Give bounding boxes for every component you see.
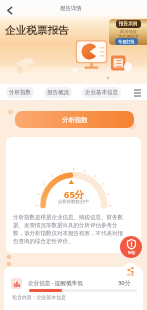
button[interactable]: 企业基本信息 — [82, 87, 121, 98]
staticText: 30分 — [118, 279, 131, 287]
button[interactable]: Report service — [120, 236, 142, 258]
staticText: 分析指数 — [62, 116, 88, 124]
staticText: 报告示例 — [119, 21, 138, 27]
staticText: 企业税票报告 — [5, 24, 69, 37]
staticText: 分析指数是根据企业信息、纳税信息、财务数据、发票情况等数据出具的分析评估参考分数… — [13, 214, 128, 244]
button[interactable]: Share — [122, 263, 139, 280]
staticText: 报告详情 — [60, 5, 82, 12]
staticText: 专属打造 — [118, 39, 135, 44]
staticText: 报告概况 — [47, 89, 69, 96]
staticText: 分析指数得分中 — [58, 199, 89, 205]
button[interactable]: 分析指数 — [15, 111, 134, 128]
staticText: 分享 — [127, 273, 134, 277]
staticText: 包含内容：企业基本信息 — [12, 294, 66, 300]
staticText: 企业基本信息 — [85, 89, 118, 96]
staticText: 为亿易助手 — [118, 34, 139, 39]
button[interactable]: 报告概况 — [44, 87, 72, 98]
staticText: 分析指数 — [9, 89, 31, 96]
button[interactable]: 分析指数 — [6, 87, 34, 98]
button[interactable]: Back — [2, 3, 17, 18]
staticText: 报告 — [128, 250, 136, 255]
staticText: 65分 — [64, 188, 85, 201]
staticText: 四川信佳 — [120, 29, 137, 34]
staticText: 企业信息 · 提醒概率低 — [28, 279, 83, 287]
button[interactable]: More — [132, 87, 143, 98]
button[interactable]: 企业信息 · 提醒概率低 — [4, 267, 143, 310]
